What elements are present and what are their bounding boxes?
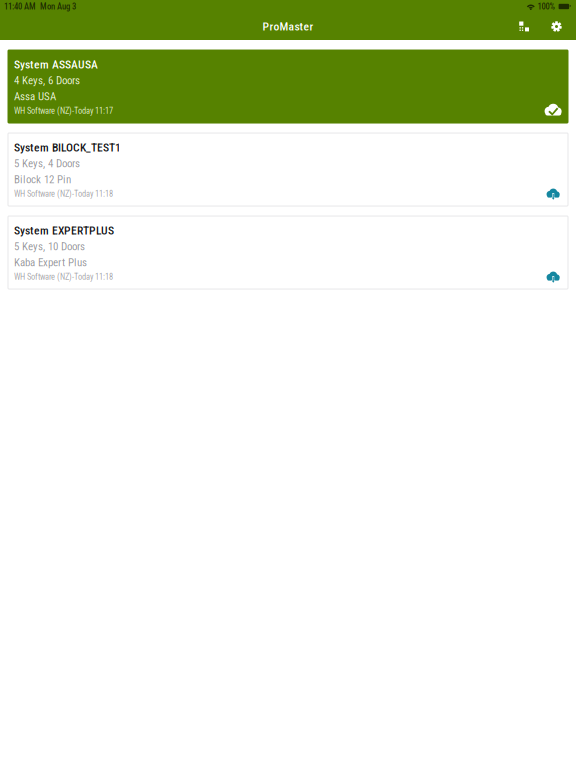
staticText: 5 Keys, 10 Doors: [14, 240, 85, 253]
button[interactable]: System ASSAUSA: [8, 50, 568, 123]
staticText: Bilock 12 Pin: [14, 173, 71, 186]
staticText: WH Software (NZ)-Today 11:18: [14, 272, 113, 282]
staticText: 5 Keys, 4 Doors: [14, 157, 80, 170]
staticText: System EXPERTPLUS: [14, 224, 114, 237]
staticText: System ASSAUSA: [14, 58, 98, 71]
button[interactable]: Settings: [551, 21, 562, 32]
staticText: 11:40 AM: [4, 1, 36, 12]
staticText: Assa USA: [14, 90, 56, 103]
button[interactable]: System BILOCK_TEST1: [8, 133, 568, 206]
button[interactable]: Systems: [519, 21, 529, 31]
staticText: WH Software (NZ)-Today 11:17: [14, 106, 113, 116]
button[interactable]: System EXPERTPLUS: [8, 216, 568, 289]
staticText: ProMaster: [262, 20, 313, 33]
staticText: System BILOCK_TEST1: [14, 141, 121, 154]
staticText: Kaba Expert Plus: [14, 256, 87, 269]
staticText: WH Software (NZ)-Today 11:18: [14, 189, 113, 199]
staticText: 4 Keys, 6 Doors: [14, 74, 80, 87]
staticText: Mon Aug 3: [40, 1, 76, 12]
staticText: 100%: [538, 1, 556, 12]
